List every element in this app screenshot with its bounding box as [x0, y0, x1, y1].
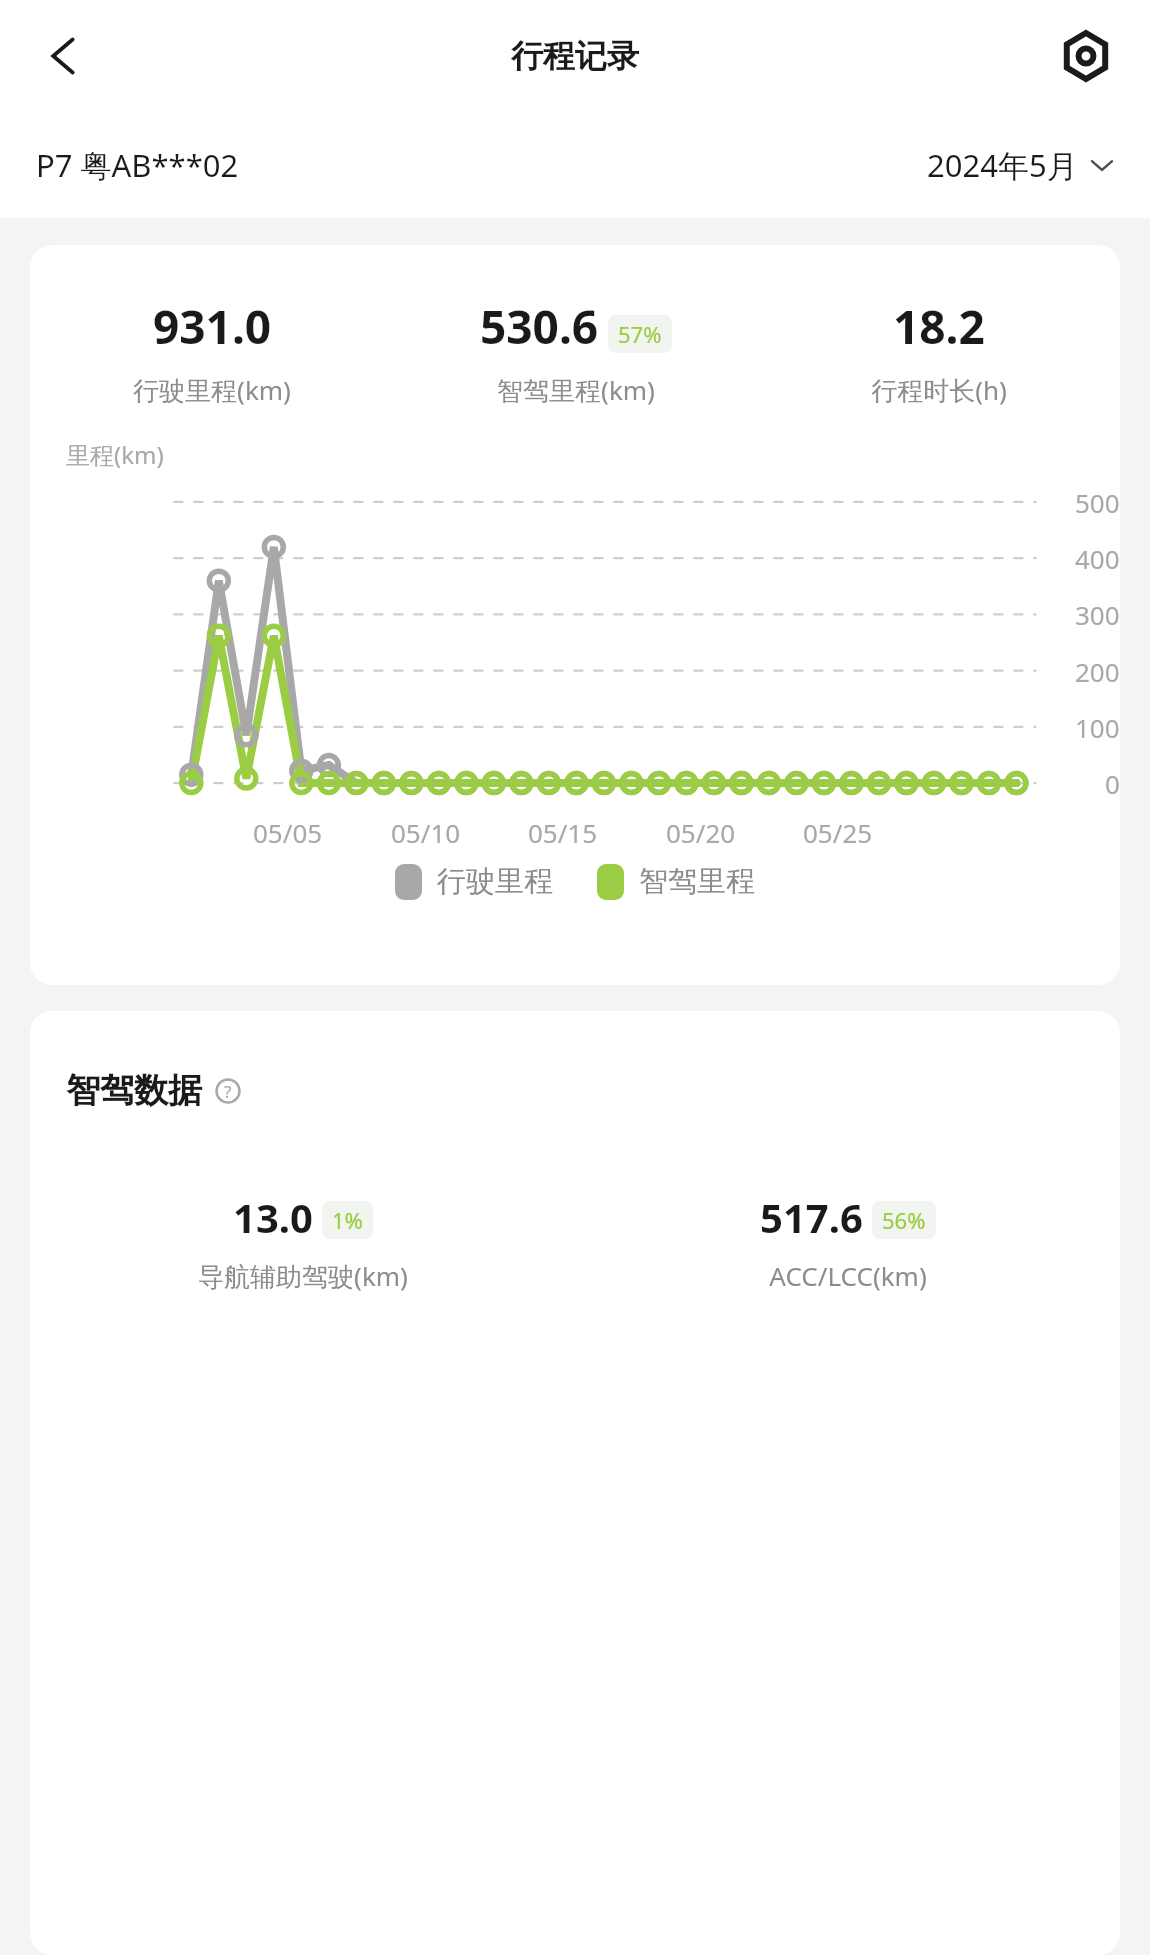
- staticText: 行驶里程: [437, 863, 553, 900]
- button[interactable]: 智驾里程: [597, 863, 755, 900]
- staticText: 导航辅助驾驶(km): [198, 1258, 408, 1294]
- staticText: 05/05: [253, 815, 323, 850]
- button[interactable]: Back: [26, 18, 102, 94]
- staticText: 0: [1105, 766, 1120, 801]
- staticText: 18.2: [893, 295, 985, 358]
- staticText: 05/15: [528, 815, 598, 850]
- staticText: 300: [1075, 597, 1120, 632]
- staticText: 智驾数据: [66, 1069, 202, 1112]
- staticText: 530.6: [480, 295, 599, 358]
- staticText: 05/25: [803, 815, 873, 850]
- staticText: 智驾里程: [639, 863, 755, 900]
- staticText: 行程记录: [511, 36, 639, 76]
- staticText: 100: [1075, 710, 1120, 745]
- staticText: ?: [224, 1080, 232, 1103]
- staticText: 05/10: [391, 815, 461, 850]
- button[interactable]: 2024年5月: [927, 144, 1114, 186]
- staticText: 500: [1075, 485, 1120, 520]
- staticText: 智驾里程(km): [497, 372, 655, 408]
- staticText: 13.0: [233, 1190, 313, 1244]
- staticText: 517.6: [760, 1190, 863, 1244]
- staticText: P7 粤AB***02: [36, 144, 239, 186]
- staticText: 里程(km): [66, 438, 164, 471]
- staticText: ACC/LCC(km): [769, 1258, 927, 1293]
- staticText: 931.0: [153, 295, 272, 358]
- staticText: 行程时长(h): [871, 372, 1007, 408]
- staticText: 57%: [618, 319, 662, 349]
- staticText: 400: [1075, 541, 1120, 576]
- staticText: 200: [1075, 654, 1120, 689]
- staticText: 1%: [332, 1205, 363, 1235]
- button[interactable]: Settings: [1048, 18, 1124, 94]
- staticText: 05/20: [666, 815, 736, 850]
- staticText: 行驶里程(km): [133, 372, 291, 408]
- staticText: 56%: [882, 1205, 926, 1235]
- staticText: 2024年5月: [927, 144, 1078, 186]
- button[interactable]: Info: [212, 1075, 244, 1107]
- button[interactable]: 行驶里程: [395, 863, 553, 900]
